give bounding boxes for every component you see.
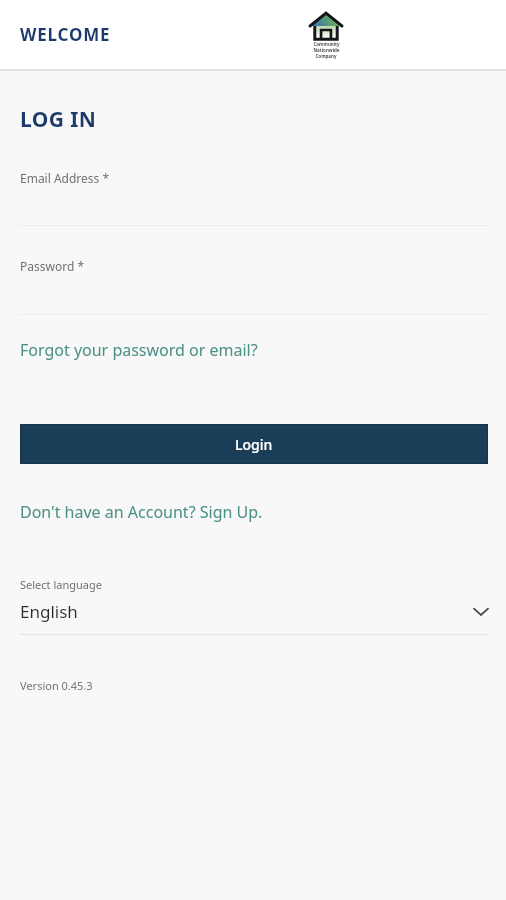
staticText: LOG IN (20, 105, 97, 134)
staticText: Select language (20, 577, 102, 592)
button[interactable]: Email Address * (0, 170, 506, 226)
other: Expand language list (474, 607, 488, 616)
staticText: Community (313, 41, 340, 47)
staticText: Email Address * (20, 170, 110, 186)
staticText: Login (235, 435, 273, 454)
button[interactable]: Forgot your password or email? (20, 339, 258, 361)
button[interactable]: Password * (0, 258, 506, 315)
staticText: Password * (20, 258, 85, 274)
button[interactable]: WELCOME (20, 23, 111, 46)
staticText: Company (315, 53, 337, 59)
staticText: English (20, 600, 78, 623)
staticText: Forgot your password or email? (20, 339, 258, 361)
button[interactable]: Community Insurance Company logo (300, 7, 352, 63)
button[interactable]: Login (20, 424, 488, 464)
button[interactable]: Don't have an Account? Sign Up. (20, 501, 263, 523)
staticText: Version 0.45.3 (20, 678, 93, 693)
staticText: Don't have an Account? Sign Up. (20, 501, 263, 523)
staticText: Nationwide (313, 47, 340, 53)
button[interactable]: Select language (0, 577, 506, 635)
